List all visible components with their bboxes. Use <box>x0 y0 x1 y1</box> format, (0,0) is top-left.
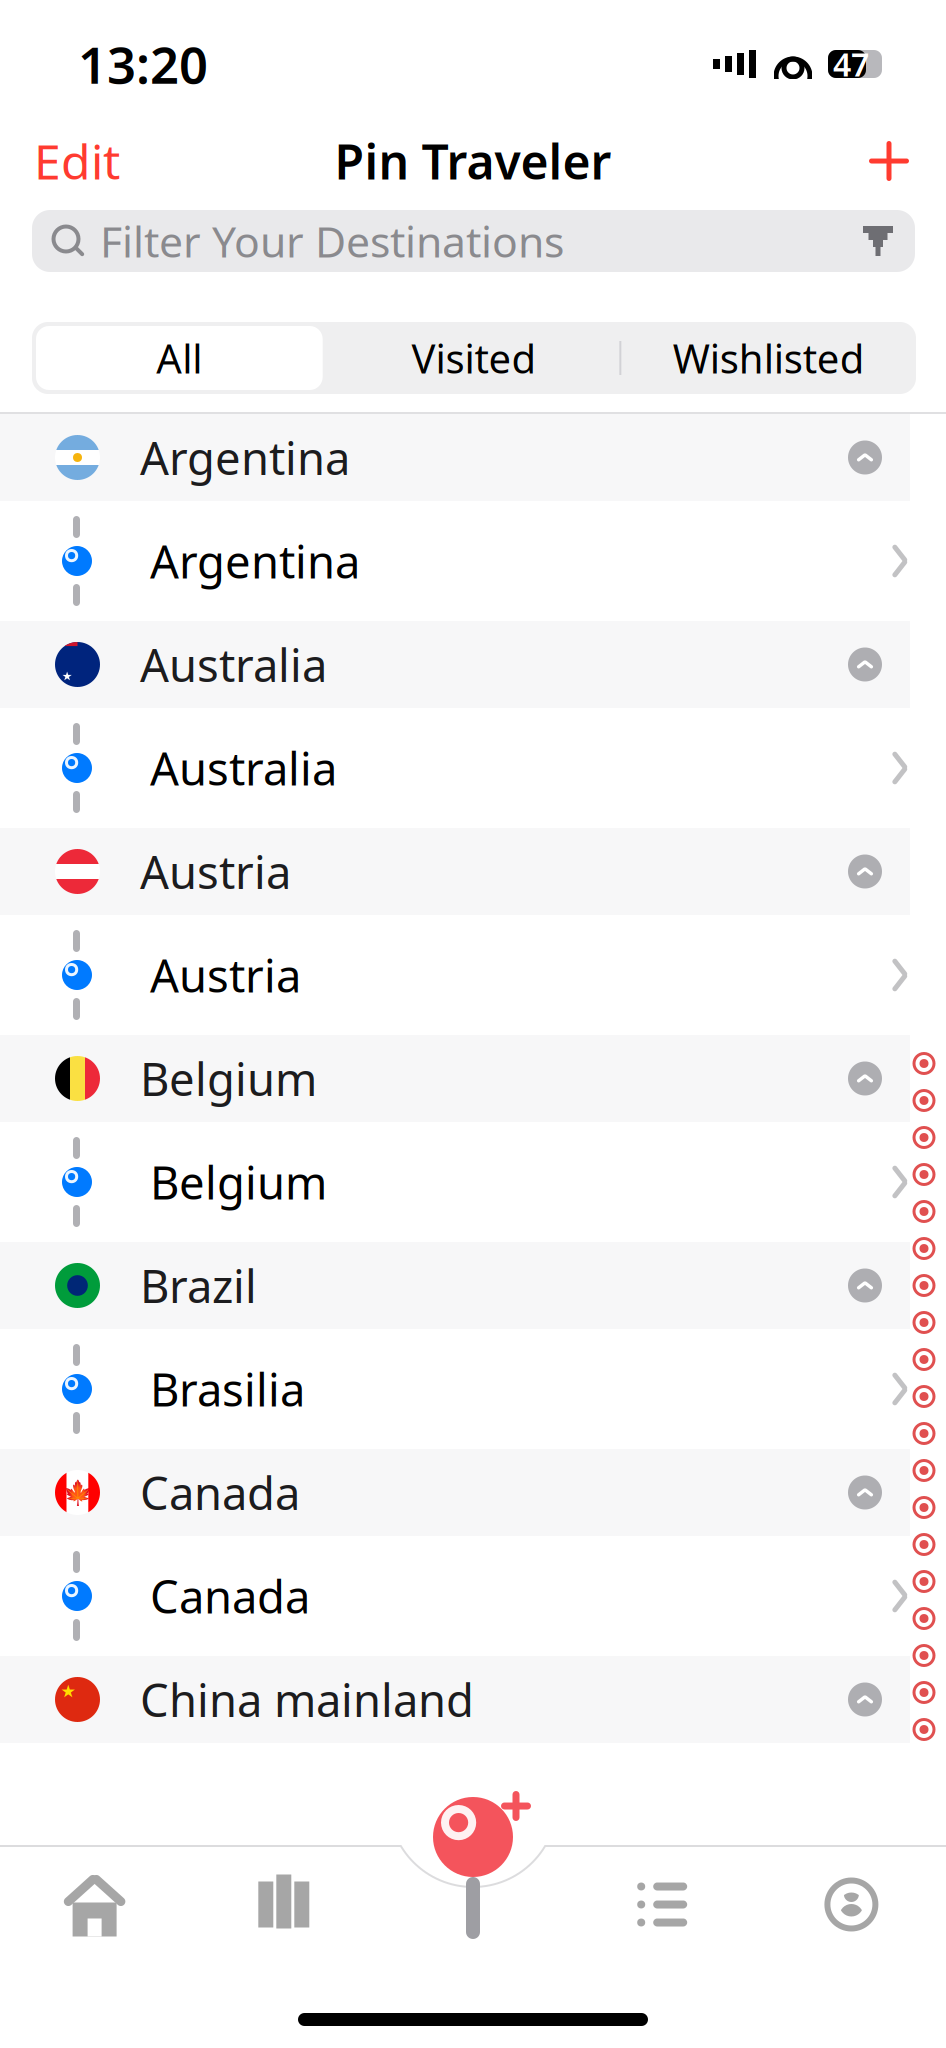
button[interactable]: List <box>633 1875 691 1933</box>
staticText: Canada <box>150 1566 310 1626</box>
staticText: Australia <box>150 738 337 798</box>
staticText: Filter Your Destinations <box>100 213 564 269</box>
staticText: Brazil <box>140 1255 257 1316</box>
button[interactable]: Brasilia <box>0 1329 946 1449</box>
button[interactable]: Filter options <box>855 218 901 264</box>
staticText: Wishlisted <box>673 331 865 384</box>
button[interactable]: Profile <box>822 1875 880 1933</box>
button[interactable]: Canada <box>0 1536 946 1656</box>
button[interactable]: Visited <box>327 322 621 394</box>
button[interactable]: Belgium <box>0 1035 946 1122</box>
staticText: Argentina <box>140 427 350 488</box>
staticText: All <box>156 331 202 384</box>
staticText: Australia <box>140 634 327 695</box>
button[interactable]: Austria <box>0 828 946 915</box>
staticText: Canada <box>140 1462 300 1523</box>
button[interactable]: Map <box>255 1875 313 1933</box>
button[interactable]: Belgium <box>0 1122 946 1242</box>
button[interactable]: Edit <box>0 119 120 203</box>
button[interactable]: Austria <box>0 915 946 1035</box>
button[interactable]: Argentina <box>0 414 946 501</box>
staticText: Visited <box>411 331 536 384</box>
staticText: Pin Traveler <box>334 129 611 193</box>
staticText: Belgium <box>140 1048 317 1109</box>
staticText: Austria <box>150 945 301 1005</box>
button[interactable]: Add destination <box>860 132 946 190</box>
button[interactable]: Argentina <box>0 501 946 621</box>
staticText: 13:20 <box>78 30 208 98</box>
button[interactable]: Australia <box>0 708 946 828</box>
staticText: Belgium <box>150 1152 327 1212</box>
staticText: Brasilia <box>150 1359 305 1419</box>
button[interactable]: Brazil <box>0 1242 946 1329</box>
button[interactable]: ★ <box>0 1656 946 1743</box>
button[interactable]: Wishlisted <box>621 322 916 394</box>
button[interactable]: All <box>32 322 327 394</box>
staticText: Edit <box>34 129 120 193</box>
staticText: Austria <box>140 841 291 902</box>
staticText: 47 <box>833 43 869 85</box>
staticText: ★ <box>60 1681 76 1701</box>
staticText: 🍁 <box>62 1479 92 1506</box>
staticText: Argentina <box>150 531 360 591</box>
button[interactable]: 🍁 <box>0 1449 946 1536</box>
button[interactable]: Add new pin <box>413 1793 533 1943</box>
button[interactable]: ★ <box>0 621 946 708</box>
staticText: China mainland <box>140 1669 474 1730</box>
staticText: ★ <box>62 669 73 683</box>
button[interactable]: Home <box>66 1875 124 1933</box>
